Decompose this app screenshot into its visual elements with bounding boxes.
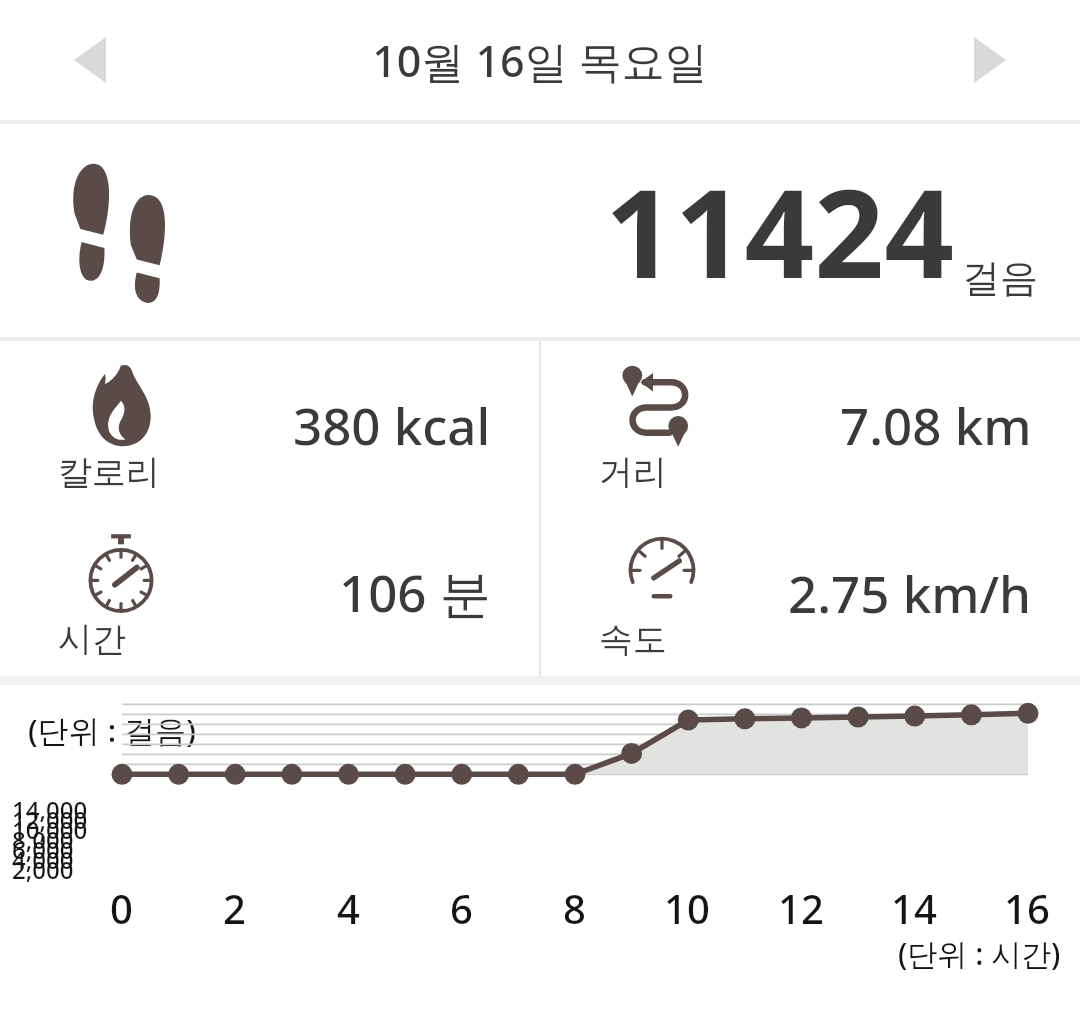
staticText: 칼로리: [58, 451, 160, 494]
button[interactable]: Previous day: [52, 22, 128, 98]
other: Calories: [76, 363, 166, 447]
staticText: 12: [778, 881, 824, 935]
other: Steps: [60, 158, 180, 303]
staticText: 11424: [605, 148, 954, 314]
button[interactable]: Steps: [0, 124, 1080, 337]
staticText: 8: [563, 881, 586, 935]
staticText: 10월 16일 목요일: [372, 31, 708, 90]
staticText: 6: [450, 881, 473, 935]
other: Hourly cumulative step chart: [0, 685, 1080, 1011]
staticText: 2,000: [12, 853, 74, 886]
staticText: 속도: [599, 618, 667, 661]
staticText: 14: [891, 881, 937, 935]
other: Speed: [617, 530, 707, 614]
staticText: 4,000: [12, 843, 74, 876]
button[interactable]: Distance: [541, 341, 1080, 508]
button[interactable]: Next day: [952, 22, 1028, 98]
staticText: 0: [110, 881, 133, 935]
staticText: 거리: [599, 451, 667, 494]
other: Distance: [617, 363, 707, 447]
staticText: (단위 : 시간): [898, 933, 1061, 974]
staticText: (단위 : 걸음): [28, 709, 196, 751]
staticText: 6,000: [12, 833, 74, 866]
staticText: 4: [337, 881, 360, 935]
staticText: 10: [664, 881, 710, 935]
staticText: 걸음: [962, 254, 1038, 302]
staticText: 14,000: [12, 793, 88, 826]
staticText: 380 kcal: [293, 390, 491, 459]
staticText: 2.75 km/h: [788, 558, 1032, 627]
staticText: 16: [1004, 881, 1050, 935]
staticText: 106 분: [339, 557, 491, 627]
button[interactable]: Calories: [0, 341, 539, 508]
staticText: 12,000: [12, 803, 88, 836]
other: Time: [76, 530, 166, 614]
staticText: 10,000: [12, 813, 88, 846]
button[interactable]: Time: [0, 508, 539, 676]
button[interactable]: Speed: [541, 508, 1080, 676]
staticText: 시간: [58, 618, 126, 661]
staticText: 7.08 km: [840, 390, 1032, 459]
staticText: 8,000: [12, 823, 74, 856]
staticText: 2: [223, 881, 246, 935]
